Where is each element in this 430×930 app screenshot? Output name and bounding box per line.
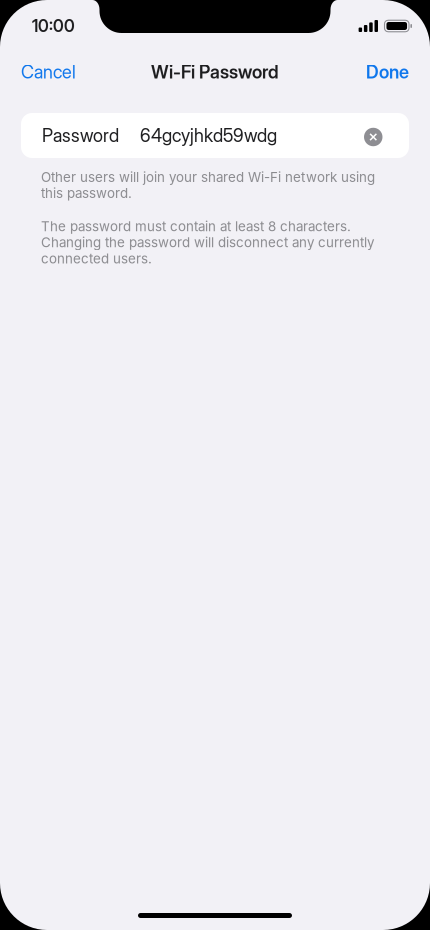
button[interactable]: Cancel (15, 52, 82, 92)
staticText: The password must contain at least 8 cha… (41, 218, 374, 267)
staticText: Other users will join your shared Wi-Fi … (41, 169, 375, 201)
staticText: Cancel (21, 61, 76, 83)
staticText: Done (366, 61, 409, 83)
staticText: 64gcyjhkd59wdg (140, 125, 277, 146)
staticText: Wi-Fi Password (151, 61, 279, 83)
button[interactable]: Done (360, 52, 415, 92)
staticText: 10:00 (32, 16, 75, 36)
button[interactable]: Clear password (364, 126, 382, 145)
staticText: Password (42, 125, 119, 146)
button[interactable]: Password (21, 113, 409, 158)
